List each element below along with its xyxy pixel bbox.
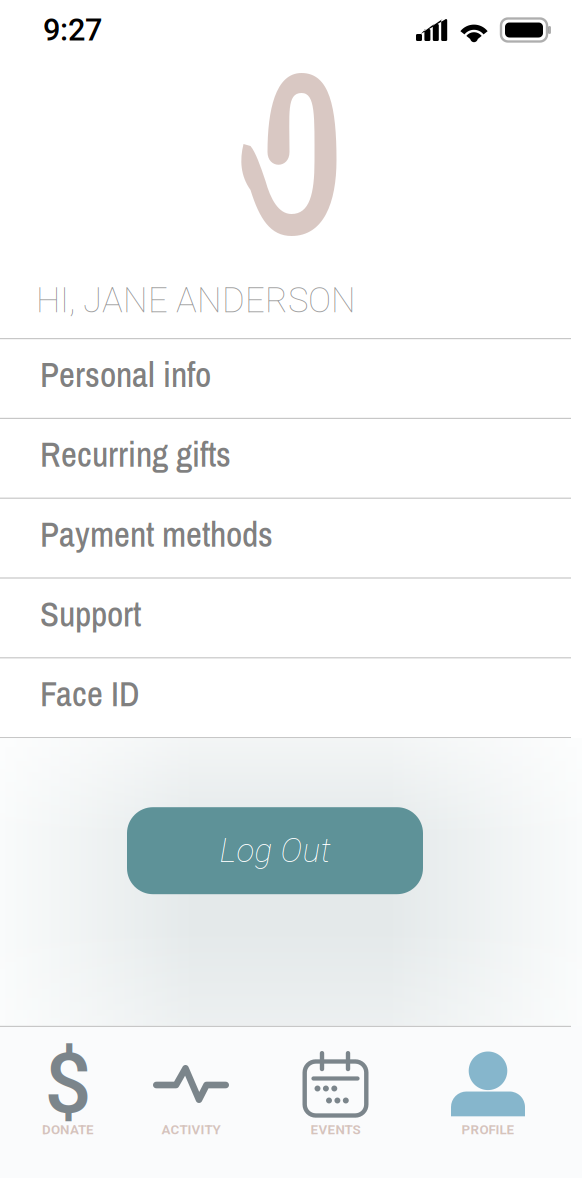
- staticText: Log Out: [219, 831, 330, 870]
- staticText: DONATE: [42, 1122, 94, 1138]
- button[interactable]: Events: [246, 1027, 425, 1178]
- staticText: Support: [40, 591, 141, 637]
- button[interactable]: Personal info: [0, 339, 582, 418]
- staticText: $: [44, 1036, 91, 1132]
- staticText: Face ID: [40, 670, 140, 717]
- staticText: Personal info: [40, 351, 211, 398]
- button[interactable]: Donate: [0, 1027, 136, 1178]
- staticText: HI, JANE ANDERSON: [36, 280, 356, 321]
- staticText: Recurring gifts: [40, 431, 231, 478]
- staticText: ACTIVITY: [161, 1122, 220, 1138]
- staticText: PROFILE: [461, 1122, 514, 1138]
- button[interactable]: Support: [0, 579, 582, 657]
- button[interactable]: Face ID: [0, 658, 582, 737]
- staticText: 9:27: [43, 12, 102, 48]
- button[interactable]: Profile: [425, 1027, 551, 1178]
- staticText: EVENTS: [310, 1122, 360, 1138]
- staticText: Payment methods: [40, 511, 273, 557]
- button[interactable]: Activity: [136, 1027, 246, 1178]
- button[interactable]: Log Out: [127, 807, 423, 894]
- button[interactable]: Payment methods: [0, 499, 582, 577]
- button[interactable]: Recurring gifts: [0, 419, 582, 498]
